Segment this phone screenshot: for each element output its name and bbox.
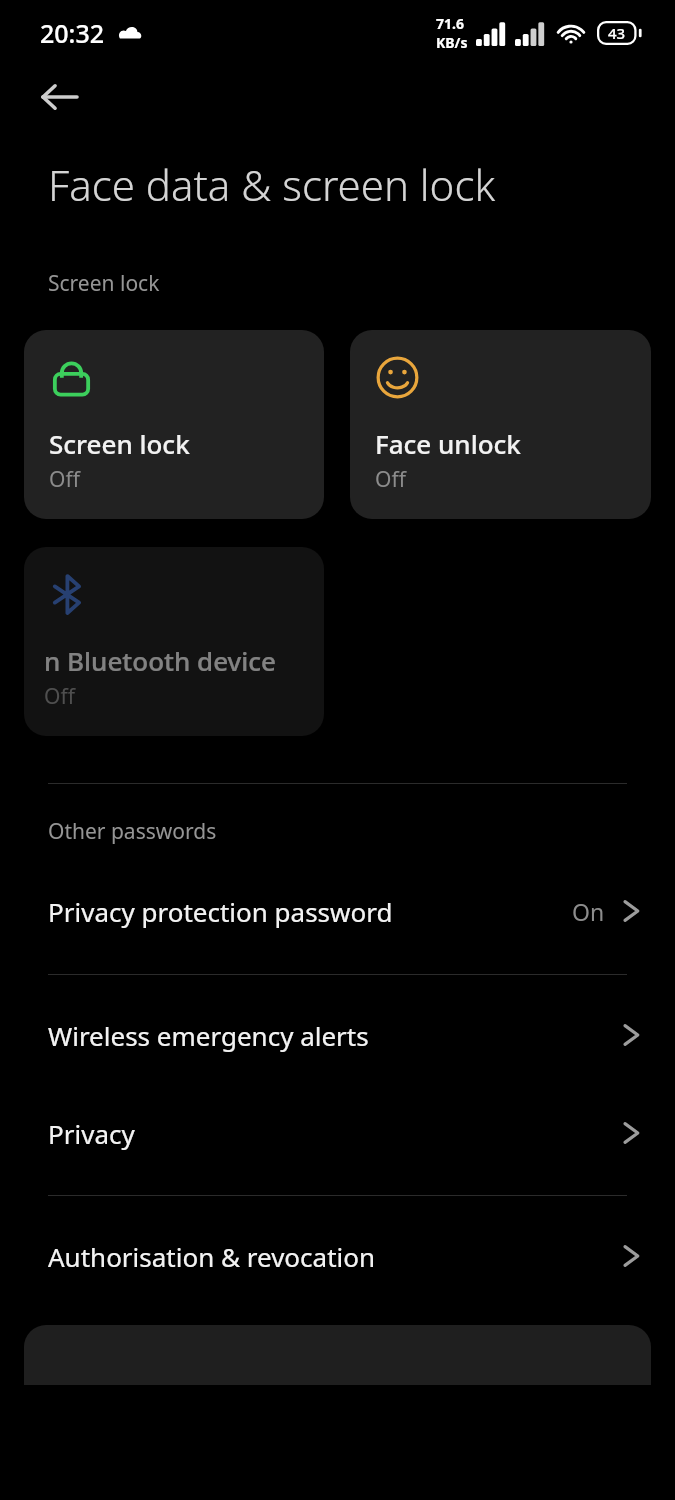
staticText: Other passwords	[48, 817, 217, 846]
staticText: 20:32	[40, 16, 105, 50]
button[interactable]: Authorisation & revocation	[0, 1219, 675, 1293]
staticText: KB/s	[436, 33, 468, 52]
staticText: 43	[608, 23, 626, 43]
staticText: Face unlock	[375, 426, 521, 461]
button[interactable]: Screen lock	[24, 330, 324, 519]
staticText: Wireless emergency alerts	[48, 1018, 621, 1053]
staticText: On	[572, 896, 605, 927]
button[interactable]: Privacy protection password	[0, 874, 675, 948]
staticText: Off	[44, 682, 75, 711]
button[interactable]: Wireless emergency alerts	[0, 998, 675, 1072]
staticText: n Bluetooth device	[44, 643, 276, 678]
staticText: Screen lock	[49, 426, 190, 461]
staticText: Off	[375, 465, 406, 494]
staticText: Face data & screen lock	[48, 156, 496, 213]
staticText: Privacy	[48, 1116, 621, 1151]
button[interactable]: Privacy	[0, 1096, 675, 1170]
staticText: Authorisation & revocation	[48, 1239, 621, 1274]
staticText: Off	[49, 465, 80, 494]
button[interactable]: Back	[32, 69, 88, 125]
staticText: Screen lock	[48, 269, 160, 298]
staticText: Privacy protection password	[48, 894, 572, 929]
button[interactable]: Face unlock	[350, 330, 651, 519]
button[interactable]: n Bluetooth device	[24, 547, 324, 736]
staticText: 71.6	[436, 14, 464, 33]
